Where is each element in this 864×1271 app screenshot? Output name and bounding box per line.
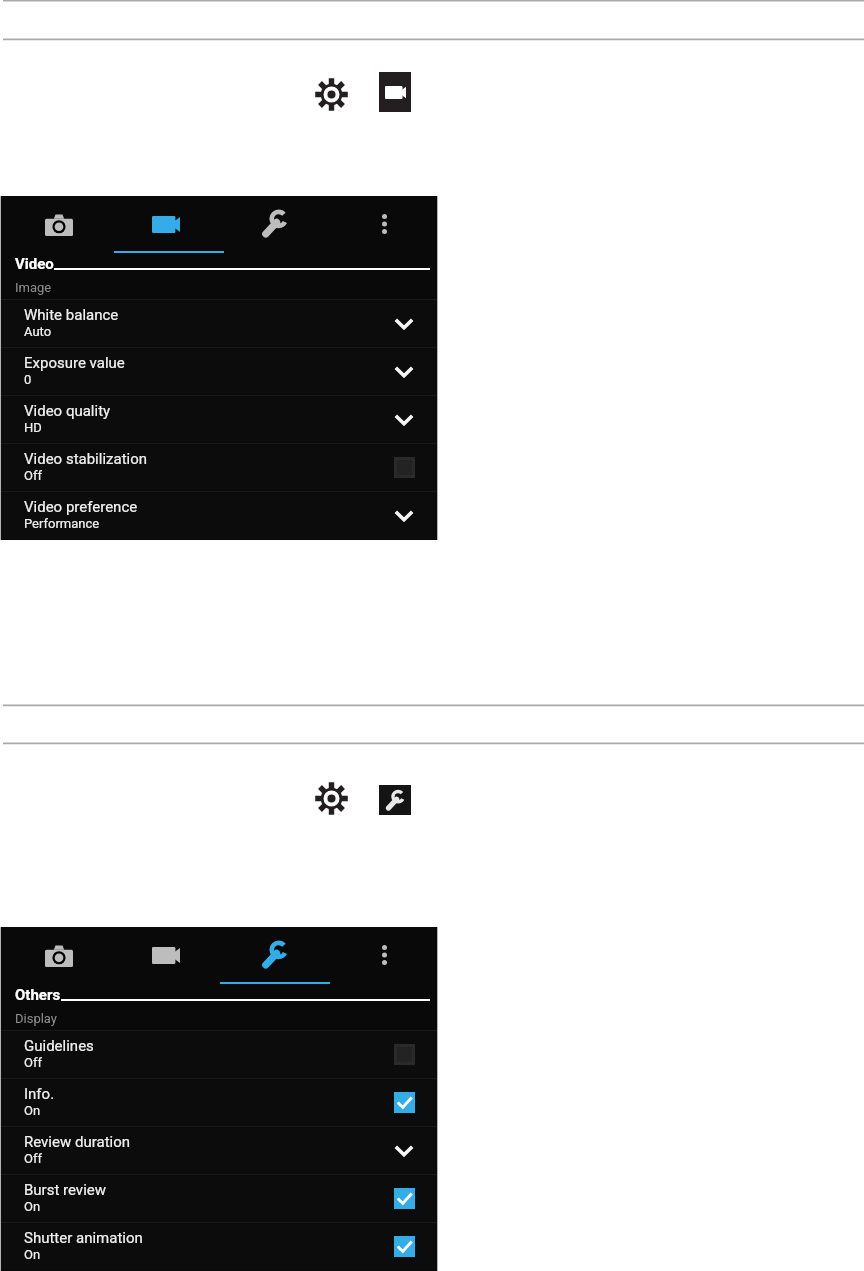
- staticText: Burst review: [24, 1181, 107, 1199]
- staticText: Image: [15, 280, 52, 295]
- button[interactable]: Video preference: [1, 492, 437, 539]
- staticText: HD: [24, 420, 42, 435]
- button[interactable]: Camera mode: [4, 927, 111, 984]
- button[interactable]: Settings: [220, 927, 327, 984]
- button[interactable]: Camera mode: [4, 196, 111, 253]
- staticText: Info.: [24, 1085, 55, 1103]
- staticText: Off: [24, 468, 42, 483]
- button[interactable]: Video quality: [1, 396, 437, 443]
- staticText: Exposure value: [24, 354, 125, 372]
- staticText: On: [24, 1199, 41, 1214]
- button[interactable]: Burst review: [1, 1175, 437, 1222]
- button[interactable]: More options: [328, 196, 435, 253]
- staticText: Review duration: [24, 1133, 131, 1151]
- staticText: Performance: [24, 516, 100, 531]
- staticText: Others: [15, 986, 61, 1004]
- button[interactable]: White balance: [1, 300, 437, 347]
- staticText: Off: [24, 1151, 42, 1166]
- staticText: Video preference: [24, 498, 138, 516]
- staticText: On: [24, 1247, 41, 1262]
- staticText: Video quality: [24, 402, 111, 420]
- button[interactable]: Info.: [1, 1079, 437, 1126]
- staticText: Video: [15, 255, 54, 273]
- button[interactable]: More options: [328, 927, 435, 984]
- staticText: Video stabilization: [24, 450, 148, 468]
- staticText: On: [24, 1103, 41, 1118]
- staticText: Display: [15, 1011, 57, 1026]
- button[interactable]: Video stabilization: [1, 444, 437, 491]
- button[interactable]: Shutter animation: [1, 1223, 437, 1270]
- staticText: Shutter animation: [24, 1229, 143, 1247]
- staticText: Auto: [24, 324, 52, 339]
- button[interactable]: Settings: [220, 196, 327, 253]
- staticText: White balance: [24, 306, 119, 324]
- staticText: Off: [24, 1055, 42, 1070]
- button[interactable]: Video mode: [112, 196, 219, 253]
- button[interactable]: Review duration: [1, 1127, 437, 1174]
- button[interactable]: Exposure value: [1, 348, 437, 395]
- staticText: Guidelines: [24, 1037, 94, 1055]
- button[interactable]: Video mode: [112, 927, 219, 984]
- button[interactable]: Guidelines: [1, 1031, 437, 1078]
- staticText: 0: [24, 372, 32, 387]
